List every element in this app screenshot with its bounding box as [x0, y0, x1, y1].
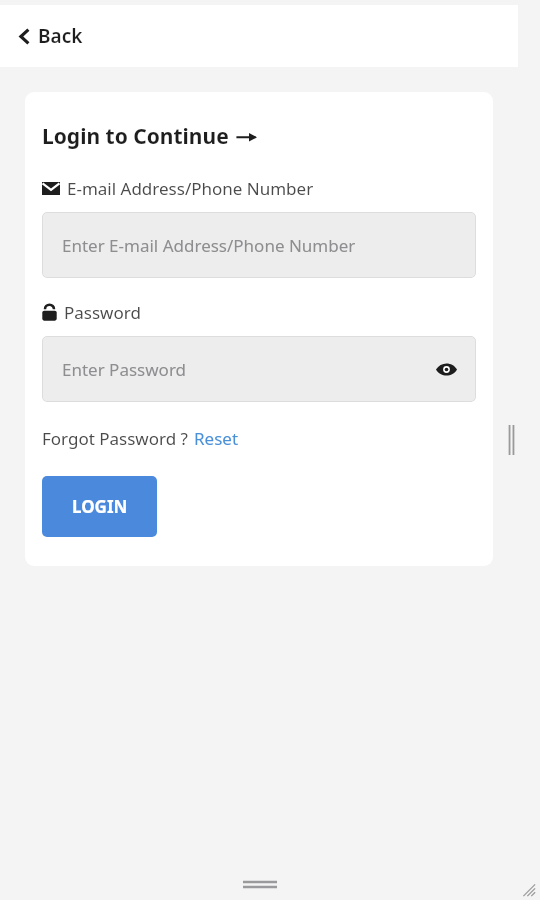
- staticText: LOGIN: [72, 495, 128, 518]
- button[interactable]: LOGIN: [42, 476, 157, 537]
- staticText: Enter Password: [62, 358, 187, 381]
- staticText: Forgot Password ?: [42, 427, 188, 450]
- staticText: Enter E-mail Address/Phone Number: [62, 234, 356, 257]
- button[interactable]: Show password: [430, 353, 462, 385]
- button[interactable]: Drag handle: [240, 874, 280, 894]
- button[interactable]: Reset: [194, 427, 239, 450]
- button[interactable]: Enter E-mail Address/Phone Number: [42, 212, 476, 278]
- button[interactable]: Enter Password: [42, 336, 476, 402]
- button[interactable]: Back: [14, 17, 87, 55]
- staticText: Login to Continue: [42, 122, 229, 151]
- other: Resize: [518, 879, 536, 897]
- staticText: Back: [38, 23, 83, 49]
- staticText: Password: [64, 301, 141, 324]
- staticText: E-mail Address/Phone Number: [67, 177, 314, 200]
- staticText: Reset: [194, 427, 239, 450]
